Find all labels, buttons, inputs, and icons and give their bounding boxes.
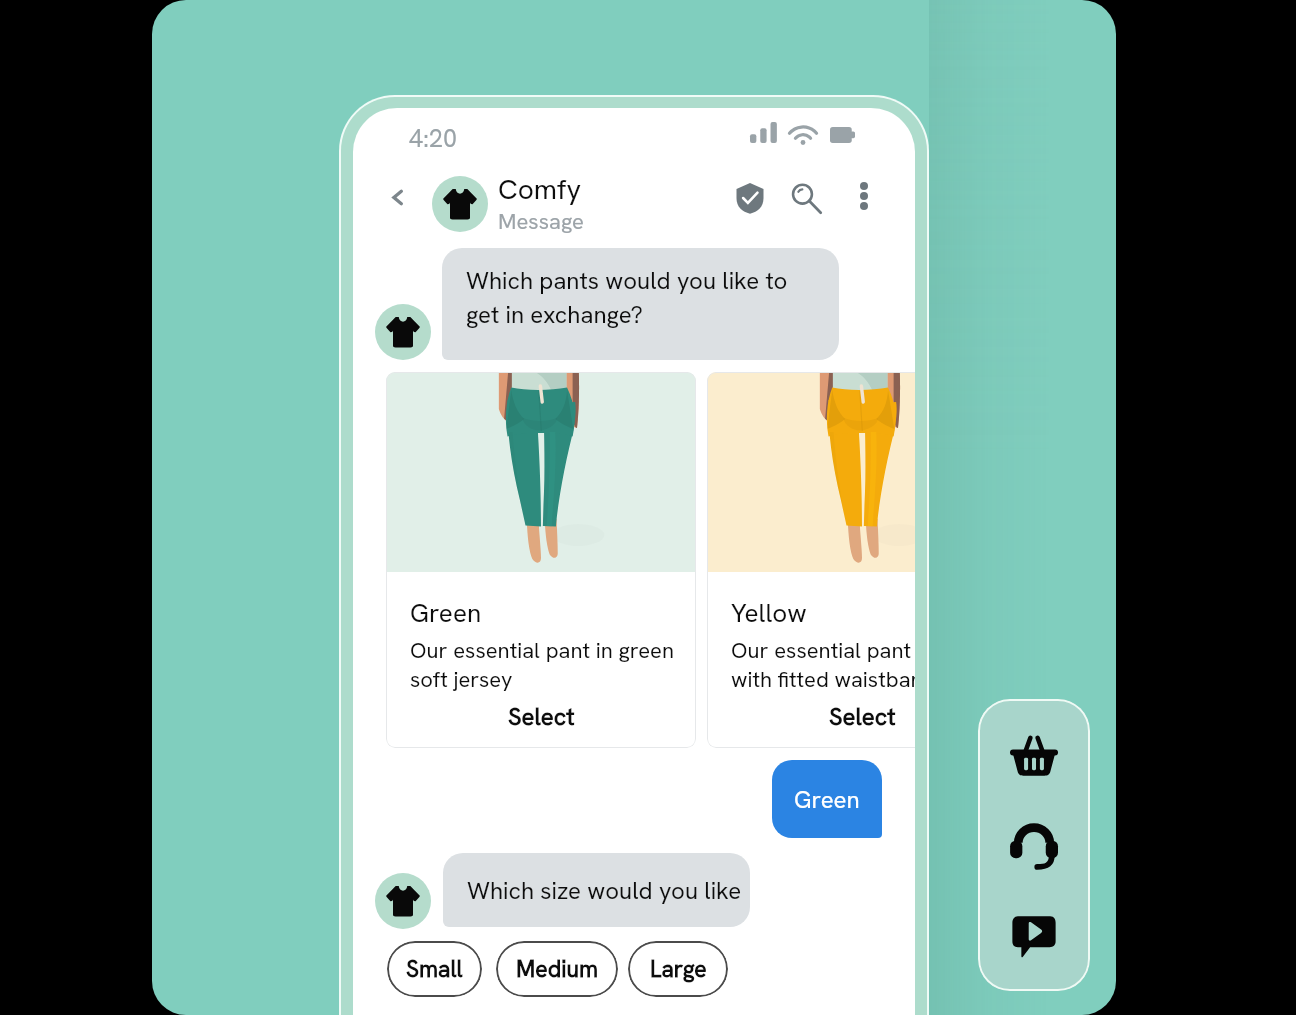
button[interactable]: Comfy bbox=[432, 171, 584, 236]
button[interactable]: Green bbox=[386, 372, 696, 748]
staticText: Green bbox=[794, 784, 860, 815]
button[interactable]: Large bbox=[628, 941, 728, 997]
button[interactable]: Medium bbox=[496, 941, 618, 997]
staticText: Medium bbox=[516, 954, 599, 984]
staticText: Our essential pant in green soft jersey bbox=[410, 636, 696, 694]
staticText: Which size would you like bbox=[467, 875, 742, 906]
staticText: Green bbox=[410, 596, 482, 630]
button[interactable]: Small bbox=[387, 941, 482, 997]
staticText: Select bbox=[508, 701, 575, 732]
button[interactable]: Shop bbox=[1010, 731, 1058, 779]
button[interactable]: Yellow bbox=[707, 372, 915, 748]
button[interactable]: Back bbox=[376, 176, 418, 218]
staticText: Our essential pant in yellow with fitted… bbox=[731, 636, 915, 694]
staticText: Select bbox=[829, 701, 896, 732]
button[interactable]: Video chat bbox=[1011, 913, 1057, 959]
staticText: Comfy bbox=[498, 171, 582, 207]
button[interactable]: Support bbox=[1009, 821, 1059, 871]
staticText: Large bbox=[650, 954, 707, 984]
staticText: Message bbox=[498, 207, 584, 236]
button[interactable]: Search bbox=[782, 174, 830, 222]
staticText: Which pants would you like to get in exc… bbox=[466, 265, 806, 330]
button[interactable]: Verified bbox=[726, 174, 774, 222]
staticText: Yellow bbox=[731, 596, 807, 630]
button[interactable]: More options bbox=[842, 174, 886, 218]
staticText: Small bbox=[406, 954, 463, 984]
staticText: 4:20 bbox=[409, 122, 458, 155]
button[interactable]: Green bbox=[772, 760, 882, 838]
